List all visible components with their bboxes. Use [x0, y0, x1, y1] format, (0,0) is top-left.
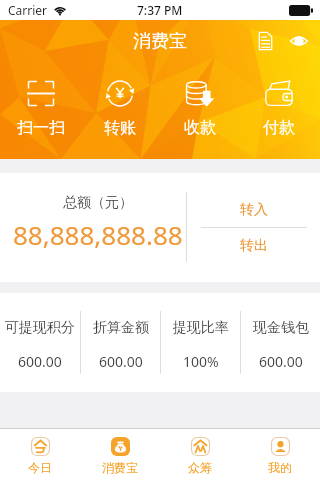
staticText: 转入: [240, 201, 268, 219]
staticText: 今日: [28, 460, 52, 475]
staticText: 600.00: [99, 352, 143, 371]
staticText: 众筹: [188, 460, 212, 475]
staticText: 600.00: [18, 352, 62, 371]
button[interactable]: 可提现积分: [0, 293, 80, 392]
button[interactable]: 付款: [241, 80, 317, 138]
button[interactable]: 转账: [82, 80, 158, 138]
button[interactable]: 消费宝: [80, 429, 160, 480]
button[interactable]: 现金钱包: [241, 293, 320, 392]
staticText: 100%: [183, 352, 219, 371]
staticText: 我的: [268, 460, 292, 475]
staticText: Carrier: [8, 2, 48, 18]
staticText: 600.00: [259, 352, 303, 371]
staticText: 扫一扫: [17, 118, 65, 138]
staticText: 7:37 PM: [137, 2, 183, 18]
staticText: 总额（元）: [63, 194, 133, 212]
button[interactable]: Records: [249, 25, 281, 57]
staticText: 收款: [184, 118, 216, 138]
staticText: 消费宝: [102, 460, 138, 475]
button[interactable]: 转入: [187, 192, 320, 227]
button[interactable]: 众筹: [160, 429, 240, 480]
staticText: 折算金额: [93, 319, 149, 337]
button[interactable]: 收款: [162, 80, 238, 138]
button[interactable]: 折算金额: [81, 293, 160, 392]
staticText: 消费宝: [133, 30, 187, 53]
button[interactable]: 提现比率: [161, 293, 240, 392]
button[interactable]: 扫一扫: [3, 80, 79, 138]
staticText: 提现比率: [173, 319, 229, 337]
staticText: 转出: [240, 237, 268, 255]
button[interactable]: 今日: [0, 429, 80, 480]
staticText: 转账: [104, 118, 136, 138]
staticText: 现金钱包: [253, 319, 309, 337]
staticText: 88,888,888.88: [13, 217, 183, 252]
button[interactable]: 我的: [240, 429, 320, 480]
button[interactable]: 转出: [187, 228, 320, 263]
button[interactable]: Toggle balance visibility: [283, 25, 315, 57]
staticText: 可提现积分: [5, 319, 75, 337]
staticText: 付款: [263, 118, 295, 138]
